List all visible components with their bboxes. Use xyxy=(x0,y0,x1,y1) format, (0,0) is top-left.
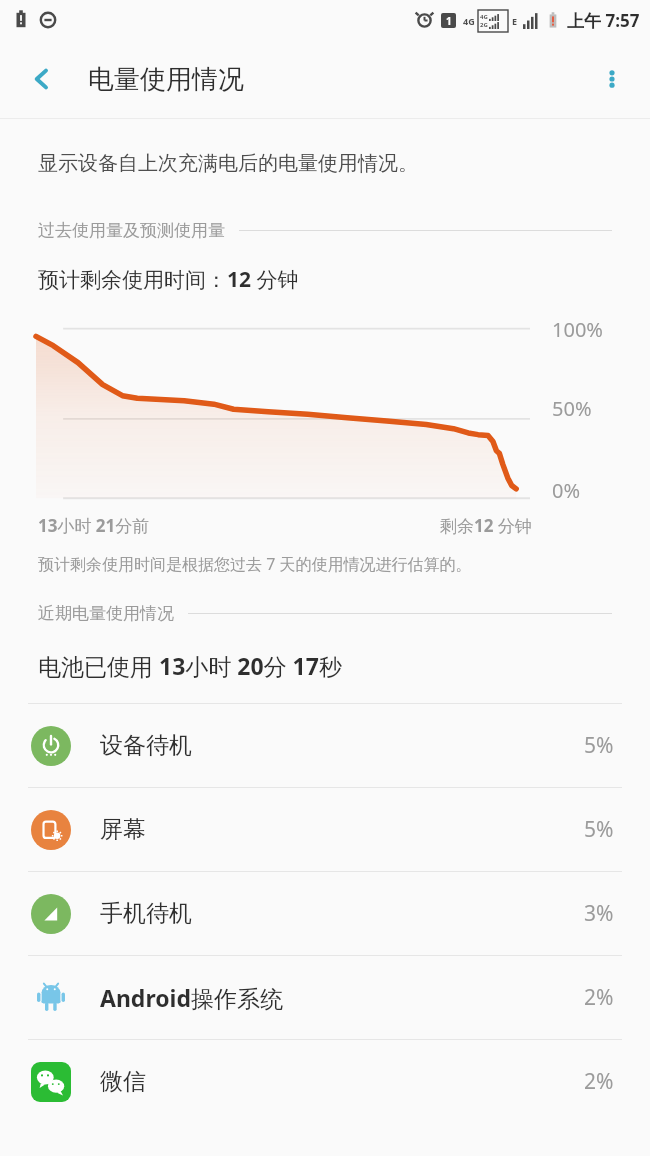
staticText: 屏幕 xyxy=(100,815,146,844)
staticText: 电池已使用 13小时 20分 17秒 xyxy=(38,650,342,681)
staticText: 微信 xyxy=(100,1067,146,1096)
button[interactable]: 微信 xyxy=(0,1040,650,1123)
staticText: 4G xyxy=(480,13,488,21)
button[interactable]: More options xyxy=(584,51,640,107)
staticText: 设备待机 xyxy=(100,731,192,760)
staticText: 50% xyxy=(552,395,592,422)
staticText: E xyxy=(512,15,518,27)
staticText: 手机待机 xyxy=(100,899,192,928)
staticText: 5% xyxy=(584,815,614,844)
staticText: 5% xyxy=(584,731,614,760)
staticText: 13小时 21分前 xyxy=(38,514,150,537)
staticText: 预计剩余使用时间是根据您过去 7 天的使用情况进行估算的。 xyxy=(38,553,472,575)
button[interactable]: Back xyxy=(14,51,70,107)
staticText: 100% xyxy=(552,316,603,343)
staticText: 4G xyxy=(463,15,475,27)
staticText: 2G xyxy=(480,21,488,29)
staticText: 电量使用情况 xyxy=(88,63,244,96)
staticText: 预计剩余使用时间：12 分钟 xyxy=(38,265,299,294)
staticText: 过去使用量及预测使用量 xyxy=(38,220,225,241)
button[interactable]: 设备待机 xyxy=(0,704,650,787)
button[interactable]: 手机待机 xyxy=(0,872,650,955)
button[interactable]: 屏幕 xyxy=(0,788,650,871)
staticText: 0% xyxy=(552,477,581,504)
staticText: 1 xyxy=(446,14,452,28)
staticText: 2% xyxy=(584,1067,614,1096)
staticText: 2% xyxy=(584,983,614,1012)
staticText: Android操作系统 xyxy=(100,982,284,1013)
button[interactable]: Android操作系统 xyxy=(0,956,650,1039)
staticText: 3% xyxy=(584,899,614,928)
staticText: 上午 7:57 xyxy=(567,9,640,32)
staticText: 显示设备自上次充满电后的电量使用情况。 xyxy=(38,151,418,176)
staticText: 剩余12 分钟 xyxy=(440,514,532,537)
staticText: 近期电量使用情况 xyxy=(38,603,174,624)
